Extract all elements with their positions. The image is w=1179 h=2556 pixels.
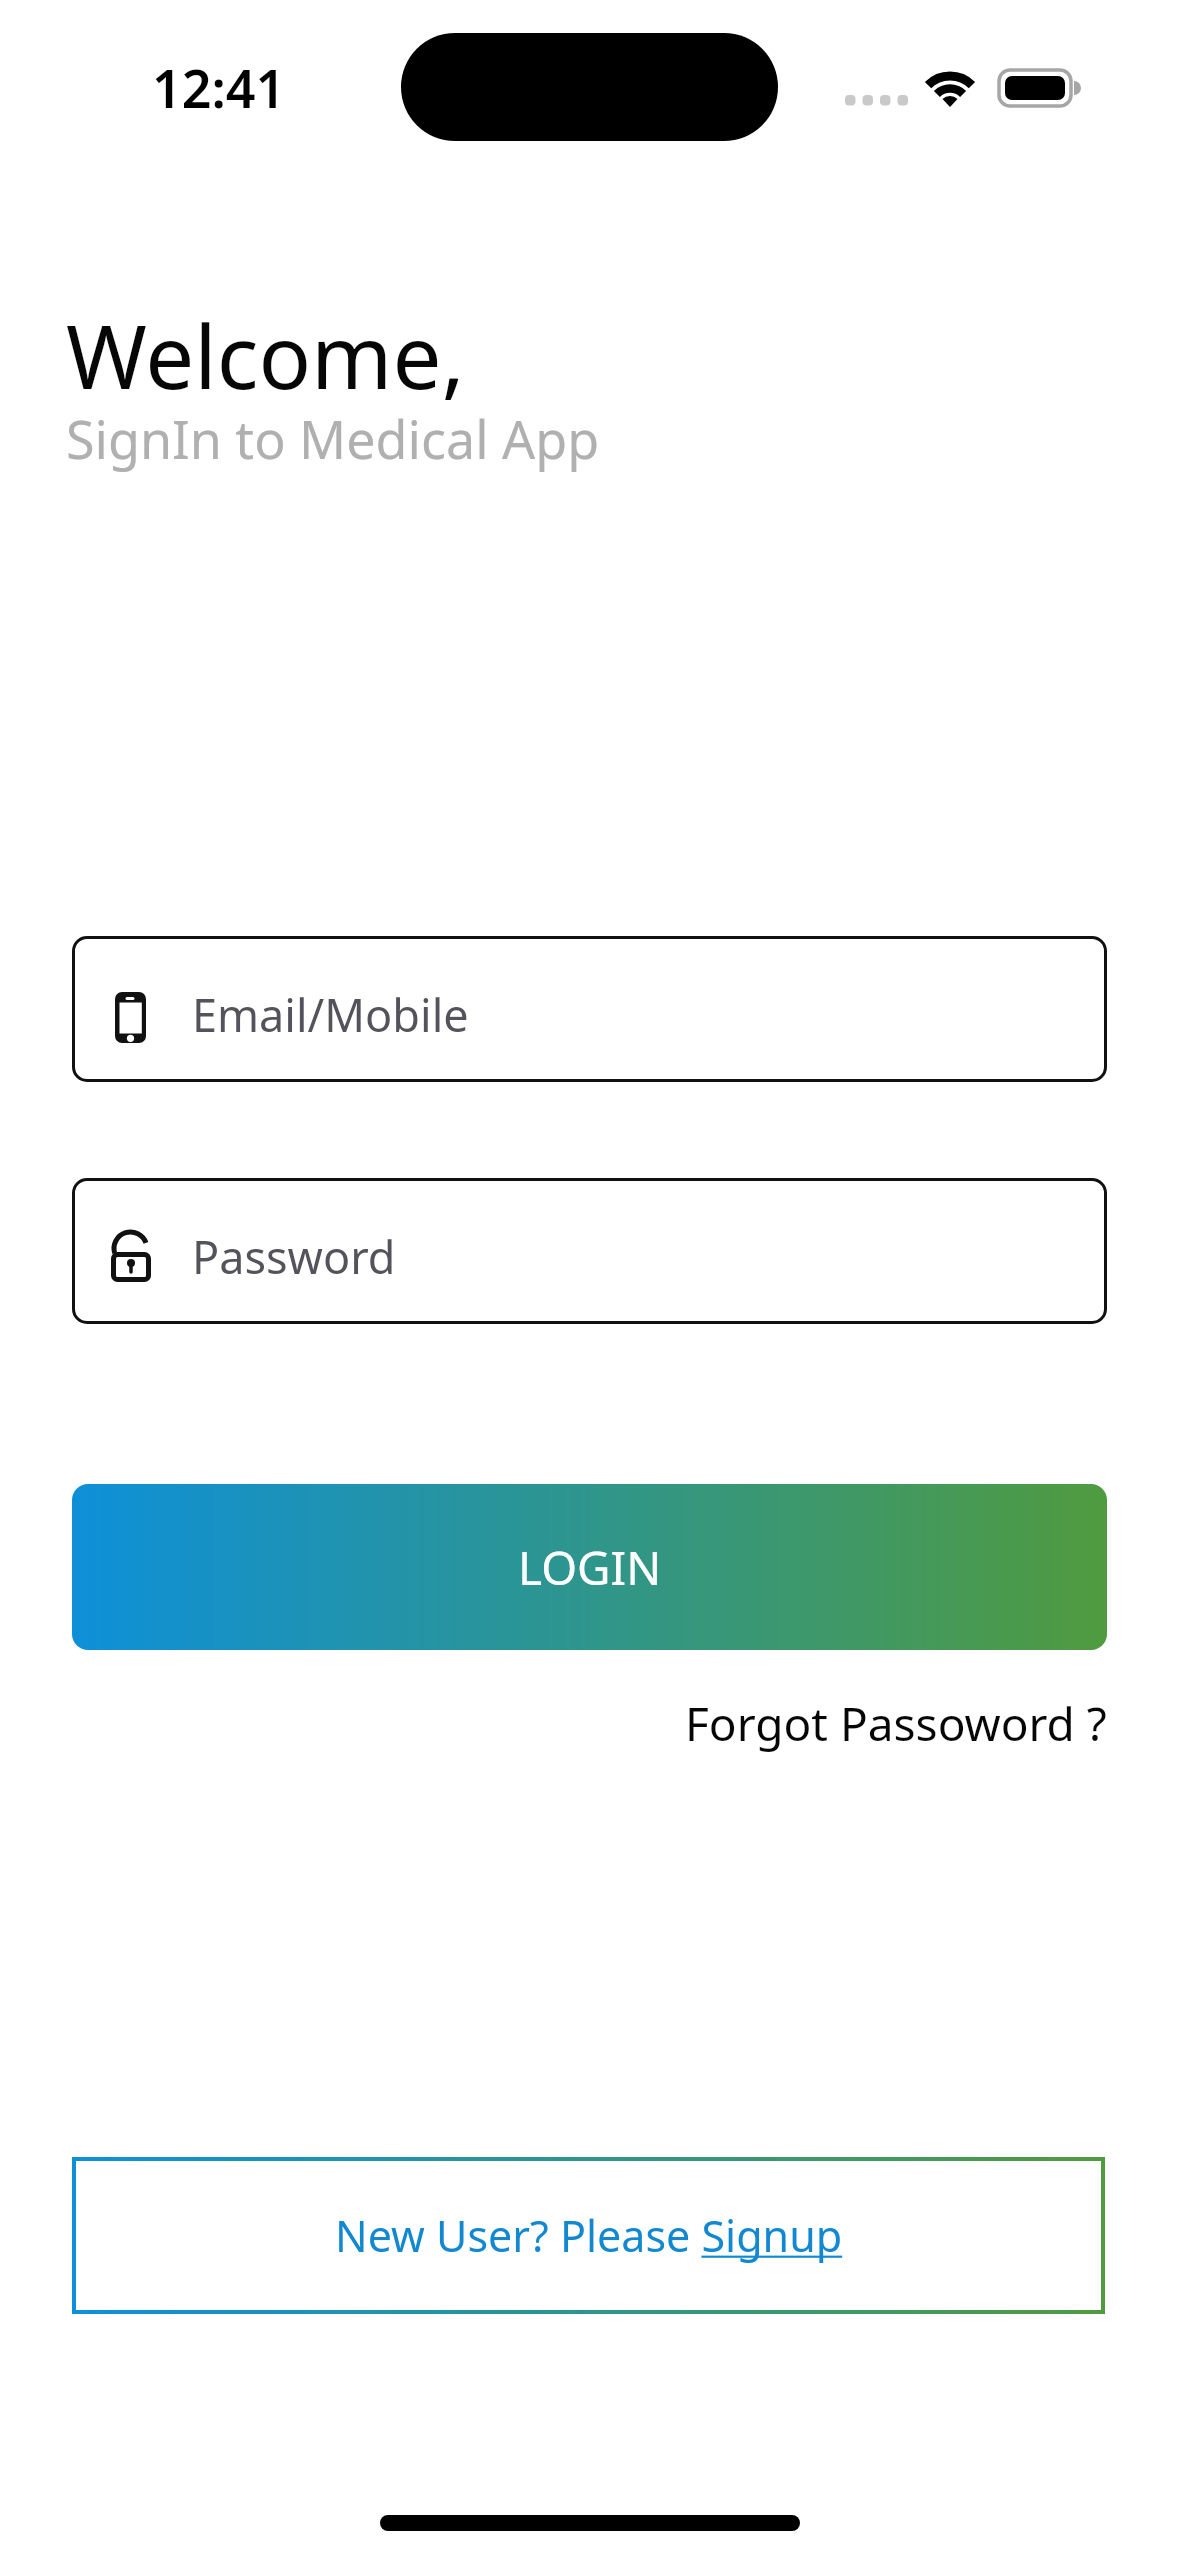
button[interactable]: Forgot Passoword ? — [685, 1692, 1107, 1755]
staticText: Email/Mobile — [192, 984, 469, 1045]
staticText: SignIn to Medical App — [66, 403, 600, 474]
staticText: 12:41 — [152, 52, 286, 123]
staticText: Welcome, — [66, 296, 465, 414]
staticText: Password — [192, 1226, 396, 1287]
button[interactable]: New User? Please Signup — [72, 2157, 1105, 2314]
button[interactable]: Password — [72, 1178, 1107, 1324]
staticText: LOGIN — [518, 1536, 662, 1599]
staticText: New User? Please Signup — [335, 2206, 843, 2265]
button[interactable]: Email/Mobile — [72, 936, 1107, 1082]
button[interactable]: LOGIN — [72, 1484, 1107, 1650]
